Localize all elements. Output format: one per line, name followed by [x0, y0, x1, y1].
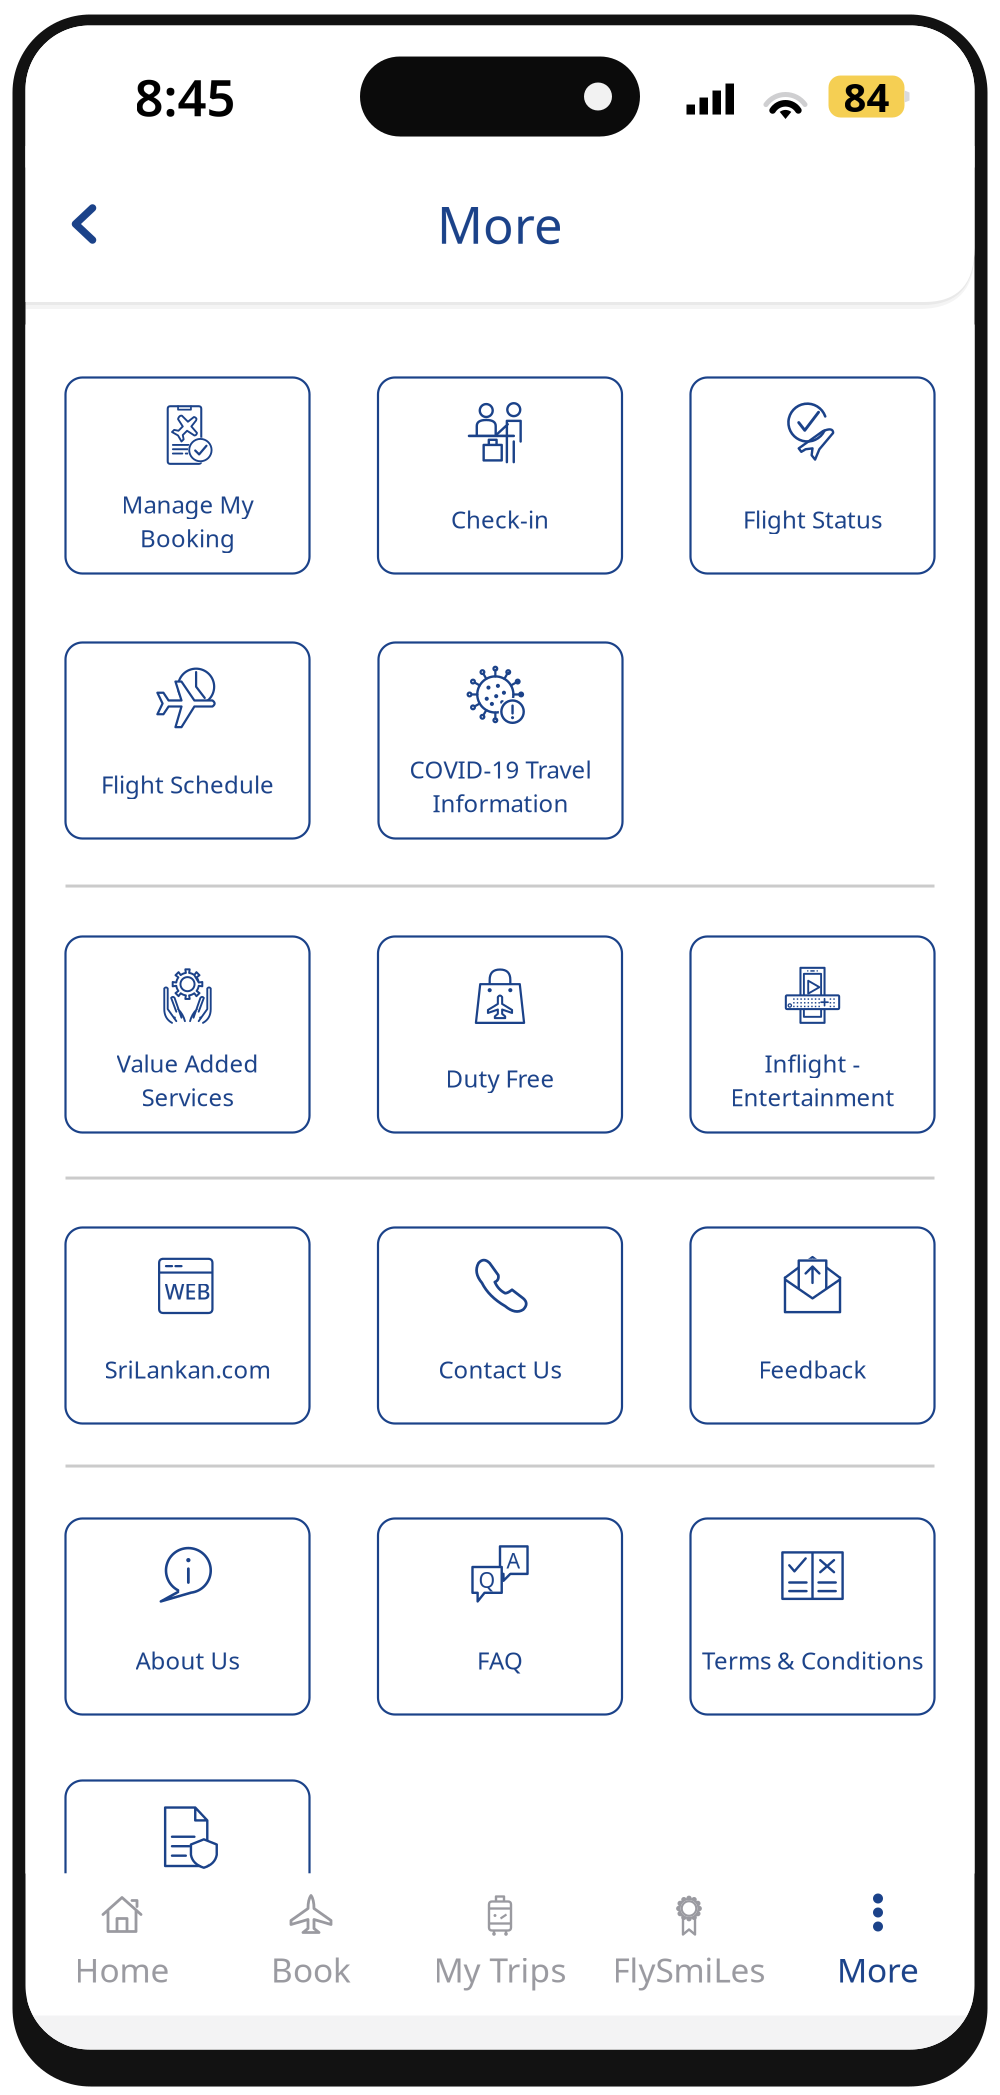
- button[interactable]: A: [378, 1518, 622, 1714]
- staticText: Services: [141, 1081, 233, 1113]
- button[interactable]: Contact Us: [378, 1227, 622, 1423]
- staticText: Duty Free: [445, 1062, 554, 1094]
- staticText: My Trips: [433, 1947, 566, 1992]
- button[interactable]: Privacy Policy: [65, 1780, 309, 1976]
- staticText: Home: [74, 1947, 169, 1992]
- button[interactable]: Duty Free: [378, 936, 622, 1132]
- staticText: 8:45: [134, 63, 235, 130]
- button[interactable]: FlySmiLes: [594, 1873, 783, 2015]
- button[interactable]: Home: [27, 1873, 216, 2015]
- button[interactable]: Terms & Conditions: [690, 1518, 934, 1714]
- staticText: FlySmiLes: [612, 1947, 765, 1992]
- staticText: FAQ: [477, 1644, 523, 1676]
- staticText: Entertainment: [730, 1081, 894, 1113]
- staticText: About Us: [135, 1644, 239, 1676]
- staticText: Terms & Conditions: [702, 1644, 923, 1676]
- button[interactable]: WEB: [65, 1227, 309, 1423]
- staticText: Privacy Policy: [111, 1906, 263, 1938]
- staticText: Booking: [140, 522, 235, 554]
- button[interactable]: Manage My: [65, 377, 309, 573]
- button[interactable]: Inflight -: [690, 936, 934, 1132]
- button[interactable]: Check-in: [378, 377, 622, 573]
- staticText: A: [506, 1546, 520, 1574]
- staticText: Feedback: [758, 1353, 866, 1385]
- staticText: Contact Us: [438, 1353, 561, 1385]
- staticText: COVID-19 Travel: [409, 753, 591, 785]
- staticText: Check-in: [451, 503, 549, 535]
- button[interactable]: About Us: [65, 1518, 309, 1714]
- staticText: Q: [478, 1566, 495, 1594]
- button[interactable]: Flight Status: [690, 377, 934, 573]
- button[interactable]: Flight Schedule: [65, 642, 309, 838]
- button[interactable]: My Trips: [405, 1873, 594, 2015]
- button[interactable]: COVID-19 Travel: [378, 642, 622, 838]
- button[interactable]: Back: [25, 169, 145, 279]
- staticText: Flight Schedule: [101, 768, 274, 800]
- staticText: Manage My: [121, 488, 253, 520]
- staticText: Information: [432, 787, 568, 819]
- staticText: Book: [271, 1947, 351, 1992]
- staticText: More: [437, 190, 563, 258]
- staticText: 84: [843, 70, 889, 123]
- button[interactable]: More: [783, 1873, 972, 2015]
- staticText: Flight Status: [743, 503, 882, 535]
- staticText: WEB: [164, 1277, 210, 1305]
- button[interactable]: Value Added: [65, 936, 309, 1132]
- button[interactable]: Book: [216, 1873, 405, 2015]
- button[interactable]: Feedback: [690, 1227, 934, 1423]
- staticText: Inflight -: [764, 1047, 860, 1079]
- staticText: Value Added: [116, 1047, 258, 1079]
- staticText: SriLankan.com: [104, 1353, 270, 1385]
- staticText: More: [837, 1947, 919, 1992]
